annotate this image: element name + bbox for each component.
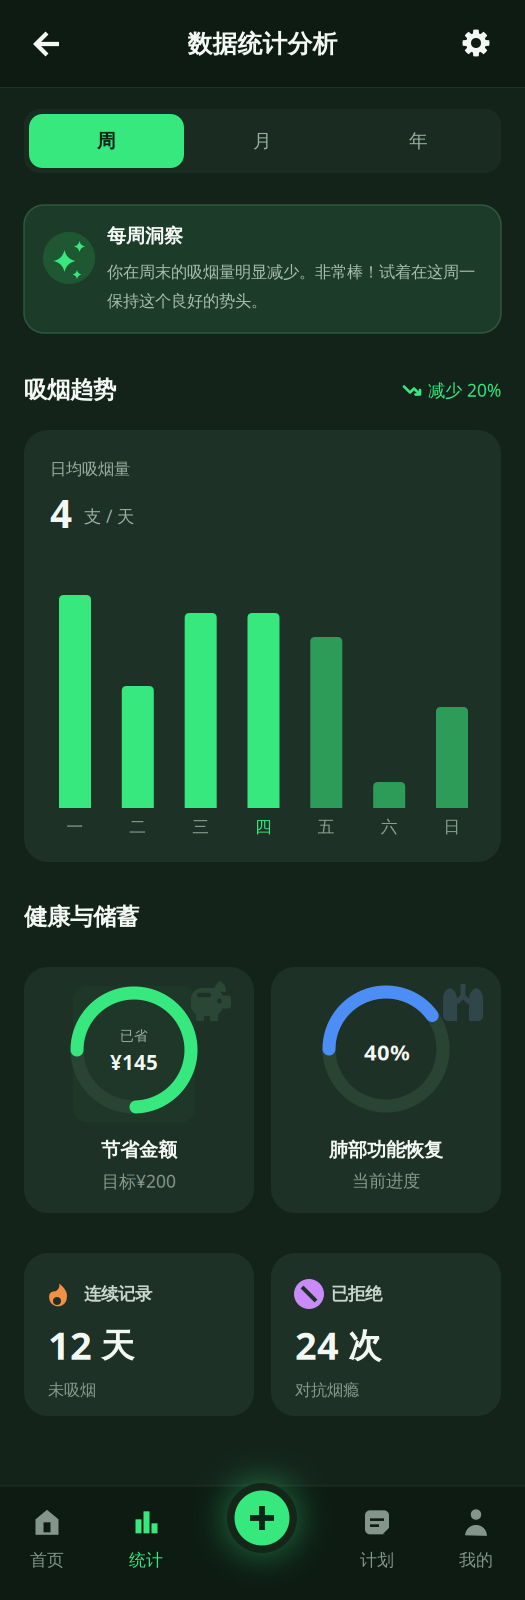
staticText: 对抗烟瘾 xyxy=(295,1380,359,1400)
staticText: 天 xyxy=(101,1325,134,1367)
staticText: 4 xyxy=(50,487,72,539)
button[interactable]: 返回 xyxy=(19,16,75,72)
staticText: 未吸烟 xyxy=(48,1380,96,1400)
button[interactable]: 月 xyxy=(185,114,340,168)
button[interactable]: 年 xyxy=(341,114,496,168)
staticText: 健康与储蓄 xyxy=(24,902,139,932)
button[interactable]: 计划 xyxy=(333,1501,421,1577)
staticText: 周 xyxy=(97,129,116,153)
staticText: 24 xyxy=(295,1319,339,1371)
staticText: 次 xyxy=(348,1325,381,1367)
staticText: 40% xyxy=(364,1037,410,1067)
staticText: 保持这个良好的势头。 xyxy=(107,291,267,311)
staticText: 已省 xyxy=(120,1027,148,1045)
staticText: 首页 xyxy=(30,1549,64,1571)
button[interactable]: 我的 xyxy=(432,1501,520,1577)
staticText: 月 xyxy=(253,129,272,153)
staticText: 减少 20% xyxy=(428,378,501,402)
staticText: 四 xyxy=(255,816,272,837)
staticText: 已拒绝 xyxy=(331,1283,382,1305)
staticText: 二 xyxy=(129,816,146,837)
button[interactable]: 周 xyxy=(29,114,184,168)
staticText: 六 xyxy=(381,816,398,837)
staticText: 吸烟趋势 xyxy=(24,375,116,405)
staticText: 支 / 天 xyxy=(84,504,134,528)
staticText: 我的 xyxy=(459,1549,493,1571)
staticText: 三 xyxy=(192,816,209,837)
staticText: 一 xyxy=(66,816,83,837)
staticText: 统计 xyxy=(129,1549,163,1571)
staticText: 日均吸烟量 xyxy=(50,459,130,479)
staticText: 每周洞察 xyxy=(107,224,183,248)
staticText: 计划 xyxy=(360,1549,394,1571)
button[interactable]: 记录吸烟 xyxy=(222,1478,302,1558)
staticText: 12 xyxy=(48,1319,92,1371)
staticText: 五 xyxy=(318,816,335,837)
staticText: 日 xyxy=(443,816,460,837)
staticText: 数据统计分析 xyxy=(187,28,337,60)
button[interactable]: 首页 xyxy=(3,1501,91,1577)
staticText: ¥145 xyxy=(110,1048,158,1076)
staticText: 连续记录 xyxy=(84,1283,152,1305)
button[interactable]: 设置 xyxy=(448,15,504,71)
staticText: 当前进度 xyxy=(352,1170,420,1192)
button[interactable]: 统计 xyxy=(102,1501,190,1577)
staticText: 目标¥200 xyxy=(102,1169,176,1193)
staticText: 你在周末的吸烟量明显减少。非常棒！试着在这周一 xyxy=(107,262,475,282)
staticText: 肺部功能恢复 xyxy=(329,1138,443,1162)
staticText: 年 xyxy=(409,129,428,153)
staticText: 节省金额 xyxy=(101,1138,177,1162)
